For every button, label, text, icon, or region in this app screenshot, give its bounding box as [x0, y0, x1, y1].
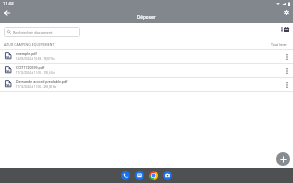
button[interactable]: Demande accord prealable.pdf: [0, 77, 293, 91]
button[interactable]: CCIT1720599.pdf: [0, 63, 293, 77]
button[interactable]: Téléphone: [120, 170, 131, 181]
button[interactable]: Appareil photo: [162, 170, 173, 181]
button[interactable]: Ajouter: [276, 152, 290, 166]
staticText: Demande accord prealable.pdf: [16, 79, 68, 84]
button[interactable]: Rechercher document: [4, 27, 80, 37]
button[interactable]: Chrome: [148, 170, 159, 181]
button[interactable]: Plus d'options: [281, 79, 292, 90]
button[interactable]: Plus d'options: [281, 65, 292, 76]
staticText: CCIT1720599.pdf: [16, 65, 45, 70]
button[interactable]: Messages: [134, 170, 145, 181]
staticText: Déposer: [137, 14, 156, 20]
button[interactable]: Filtrer par date: [281, 24, 291, 34]
staticText: Rechercher document: [13, 30, 53, 35]
staticText: 14/05/2024 à 10:58 - 78,87 Ko: [16, 57, 55, 61]
button[interactable]: Retour: [0, 6, 13, 19]
button[interactable]: Trier: [277, 24, 287, 34]
staticText: AZUR CAMPING EQUIPEMENT: [4, 42, 55, 47]
button[interactable]: Paramètres: [280, 6, 292, 18]
staticText: 17/12/2024 à 11:05 - 105,6 Ko: [16, 71, 55, 75]
staticText: exemple.pdf: [16, 51, 37, 56]
button[interactable]: exemple.pdf: [0, 49, 293, 63]
button[interactable]: Tout lister: [271, 42, 288, 47]
button[interactable]: Plus d'options: [281, 51, 292, 62]
staticText: 17/12/2024 à 11:06 - 269,00 Ko: [16, 85, 57, 89]
staticText: 11:02: [3, 1, 14, 7]
